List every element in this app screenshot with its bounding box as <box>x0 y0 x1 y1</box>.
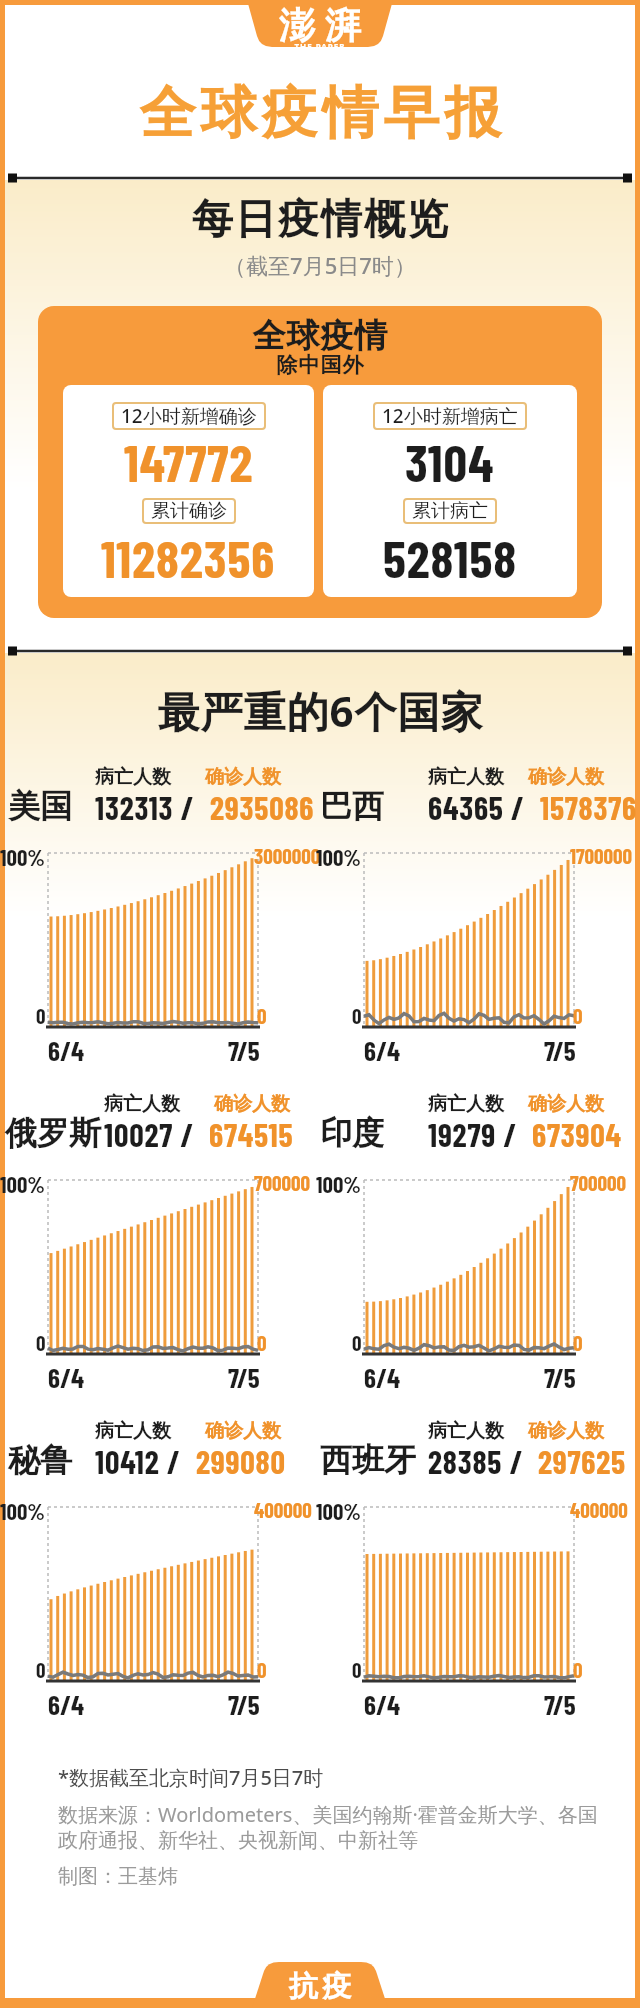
staticText: 数据来源：Worldometers、美国约翰斯·霍普金斯大学、各国 <box>58 1801 598 1828</box>
staticText: 100% <box>316 1170 361 1198</box>
staticText: 100% <box>0 1170 45 1198</box>
staticText: 确诊人数 <box>205 1419 281 1443</box>
staticText: 700000 <box>570 1170 627 1195</box>
staticText: 0 <box>573 1003 583 1028</box>
staticText: 病亡人数 <box>428 1419 504 1443</box>
staticText: 7/5 <box>228 1361 260 1393</box>
staticText: 印度 <box>320 1113 384 1153</box>
staticText: 病亡人数 <box>104 1092 180 1116</box>
staticText: 12小时新增病亡 <box>382 403 518 429</box>
staticText: 全球疫情早报 <box>137 78 503 149</box>
staticText: 6/4 <box>364 1361 401 1393</box>
staticText: 0 <box>36 1330 46 1355</box>
staticText: 俄罗斯 <box>5 1113 101 1153</box>
staticText: 0 <box>257 1657 267 1682</box>
staticText: 19279 / <box>428 1115 532 1153</box>
staticText: 0 <box>36 1003 46 1028</box>
staticText: 1700000 <box>570 843 633 868</box>
staticText: 700000 <box>254 1170 311 1195</box>
staticText: 7/5 <box>228 1688 260 1720</box>
staticText: 0 <box>352 1657 362 1682</box>
staticText: 100% <box>316 1497 361 1525</box>
staticText: 美国 <box>8 786 72 826</box>
staticText: 抗疫 <box>287 1968 353 2005</box>
button[interactable] <box>240 0 400 52</box>
staticText: 2935086 <box>210 788 315 826</box>
staticText: 7/5 <box>544 1034 576 1066</box>
staticText: 病亡人数 <box>95 1419 171 1443</box>
staticText: 11282356 <box>101 526 276 588</box>
staticText: 400000 <box>254 1497 312 1522</box>
staticText: 0 <box>352 1003 362 1028</box>
staticText: 100% <box>316 843 361 871</box>
staticText: 病亡人数 <box>428 765 504 789</box>
staticText: 0 <box>352 1330 362 1355</box>
staticText: （截至7月5日7时） <box>224 250 416 280</box>
staticText: 0 <box>573 1657 583 1682</box>
staticText: 巴西 <box>320 786 384 826</box>
staticText: 确诊人数 <box>528 1419 604 1443</box>
staticText: 147772 <box>124 430 254 492</box>
button[interactable]: 12小时新增病亡 <box>323 385 577 597</box>
staticText: 最严重的6个国家 <box>157 682 484 739</box>
staticText: 100% <box>0 843 45 871</box>
staticText: 累计确诊 <box>151 499 227 523</box>
staticText: 确诊人数 <box>205 765 281 789</box>
staticText: 100% <box>0 1497 45 1525</box>
staticText: 政府通报、新华社、央视新闻、中新社等 <box>58 1828 418 1853</box>
staticText: 除中国外 <box>276 352 364 378</box>
staticText: 0 <box>36 1657 46 1682</box>
staticText: 1578376 <box>540 788 637 826</box>
staticText: 西班牙 <box>320 1440 416 1480</box>
staticText: *数据截至北京时间7月5日7时 <box>58 1764 324 1791</box>
staticText: 7/5 <box>228 1034 260 1066</box>
staticText: 3104 <box>405 430 495 492</box>
staticText: 确诊人数 <box>528 765 604 789</box>
staticText: 全球疫情 <box>252 315 388 357</box>
button[interactable]: 12小时新增确诊 <box>63 385 314 597</box>
staticText: 674515 <box>209 1115 294 1153</box>
staticText: 制图：王基炜 <box>58 1864 178 1889</box>
staticText: 7/5 <box>544 1361 576 1393</box>
staticText: 累计病亡 <box>412 499 488 523</box>
staticText: 297625 <box>538 1442 626 1480</box>
staticText: 528158 <box>383 526 518 588</box>
staticText: 病亡人数 <box>428 1092 504 1116</box>
staticText: 秘鲁 <box>8 1440 72 1480</box>
staticText: 澎湃 <box>274 3 366 48</box>
staticText: 6/4 <box>48 1361 85 1393</box>
staticText: 299080 <box>196 1442 286 1480</box>
staticText: 64365 / <box>428 788 540 826</box>
staticText: 400000 <box>570 1497 628 1522</box>
staticText: 6/4 <box>48 1688 85 1720</box>
staticText: 每日疫情概览 <box>191 194 449 246</box>
staticText: 6/4 <box>364 1688 401 1720</box>
staticText: 3000000 <box>254 843 321 868</box>
staticText: 确诊人数 <box>214 1092 290 1116</box>
staticText: 0 <box>573 1330 583 1355</box>
button[interactable] <box>240 1958 400 2008</box>
staticText: THE PAPER <box>294 41 346 52</box>
staticText: 6/4 <box>48 1034 85 1066</box>
staticText: 10412 / <box>95 1442 196 1480</box>
staticText: 12小时新增确诊 <box>121 403 257 429</box>
staticText: 7/5 <box>544 1688 576 1720</box>
staticText: 10027 / <box>104 1115 209 1153</box>
staticText: 673904 <box>532 1115 622 1153</box>
staticText: 0 <box>257 1330 267 1355</box>
staticText: 确诊人数 <box>528 1092 604 1116</box>
staticText: 28385 / <box>428 1442 538 1480</box>
staticText: 病亡人数 <box>95 765 171 789</box>
staticText: 132313 / <box>95 788 210 826</box>
staticText: 6/4 <box>364 1034 401 1066</box>
staticText: 0 <box>257 1003 267 1028</box>
